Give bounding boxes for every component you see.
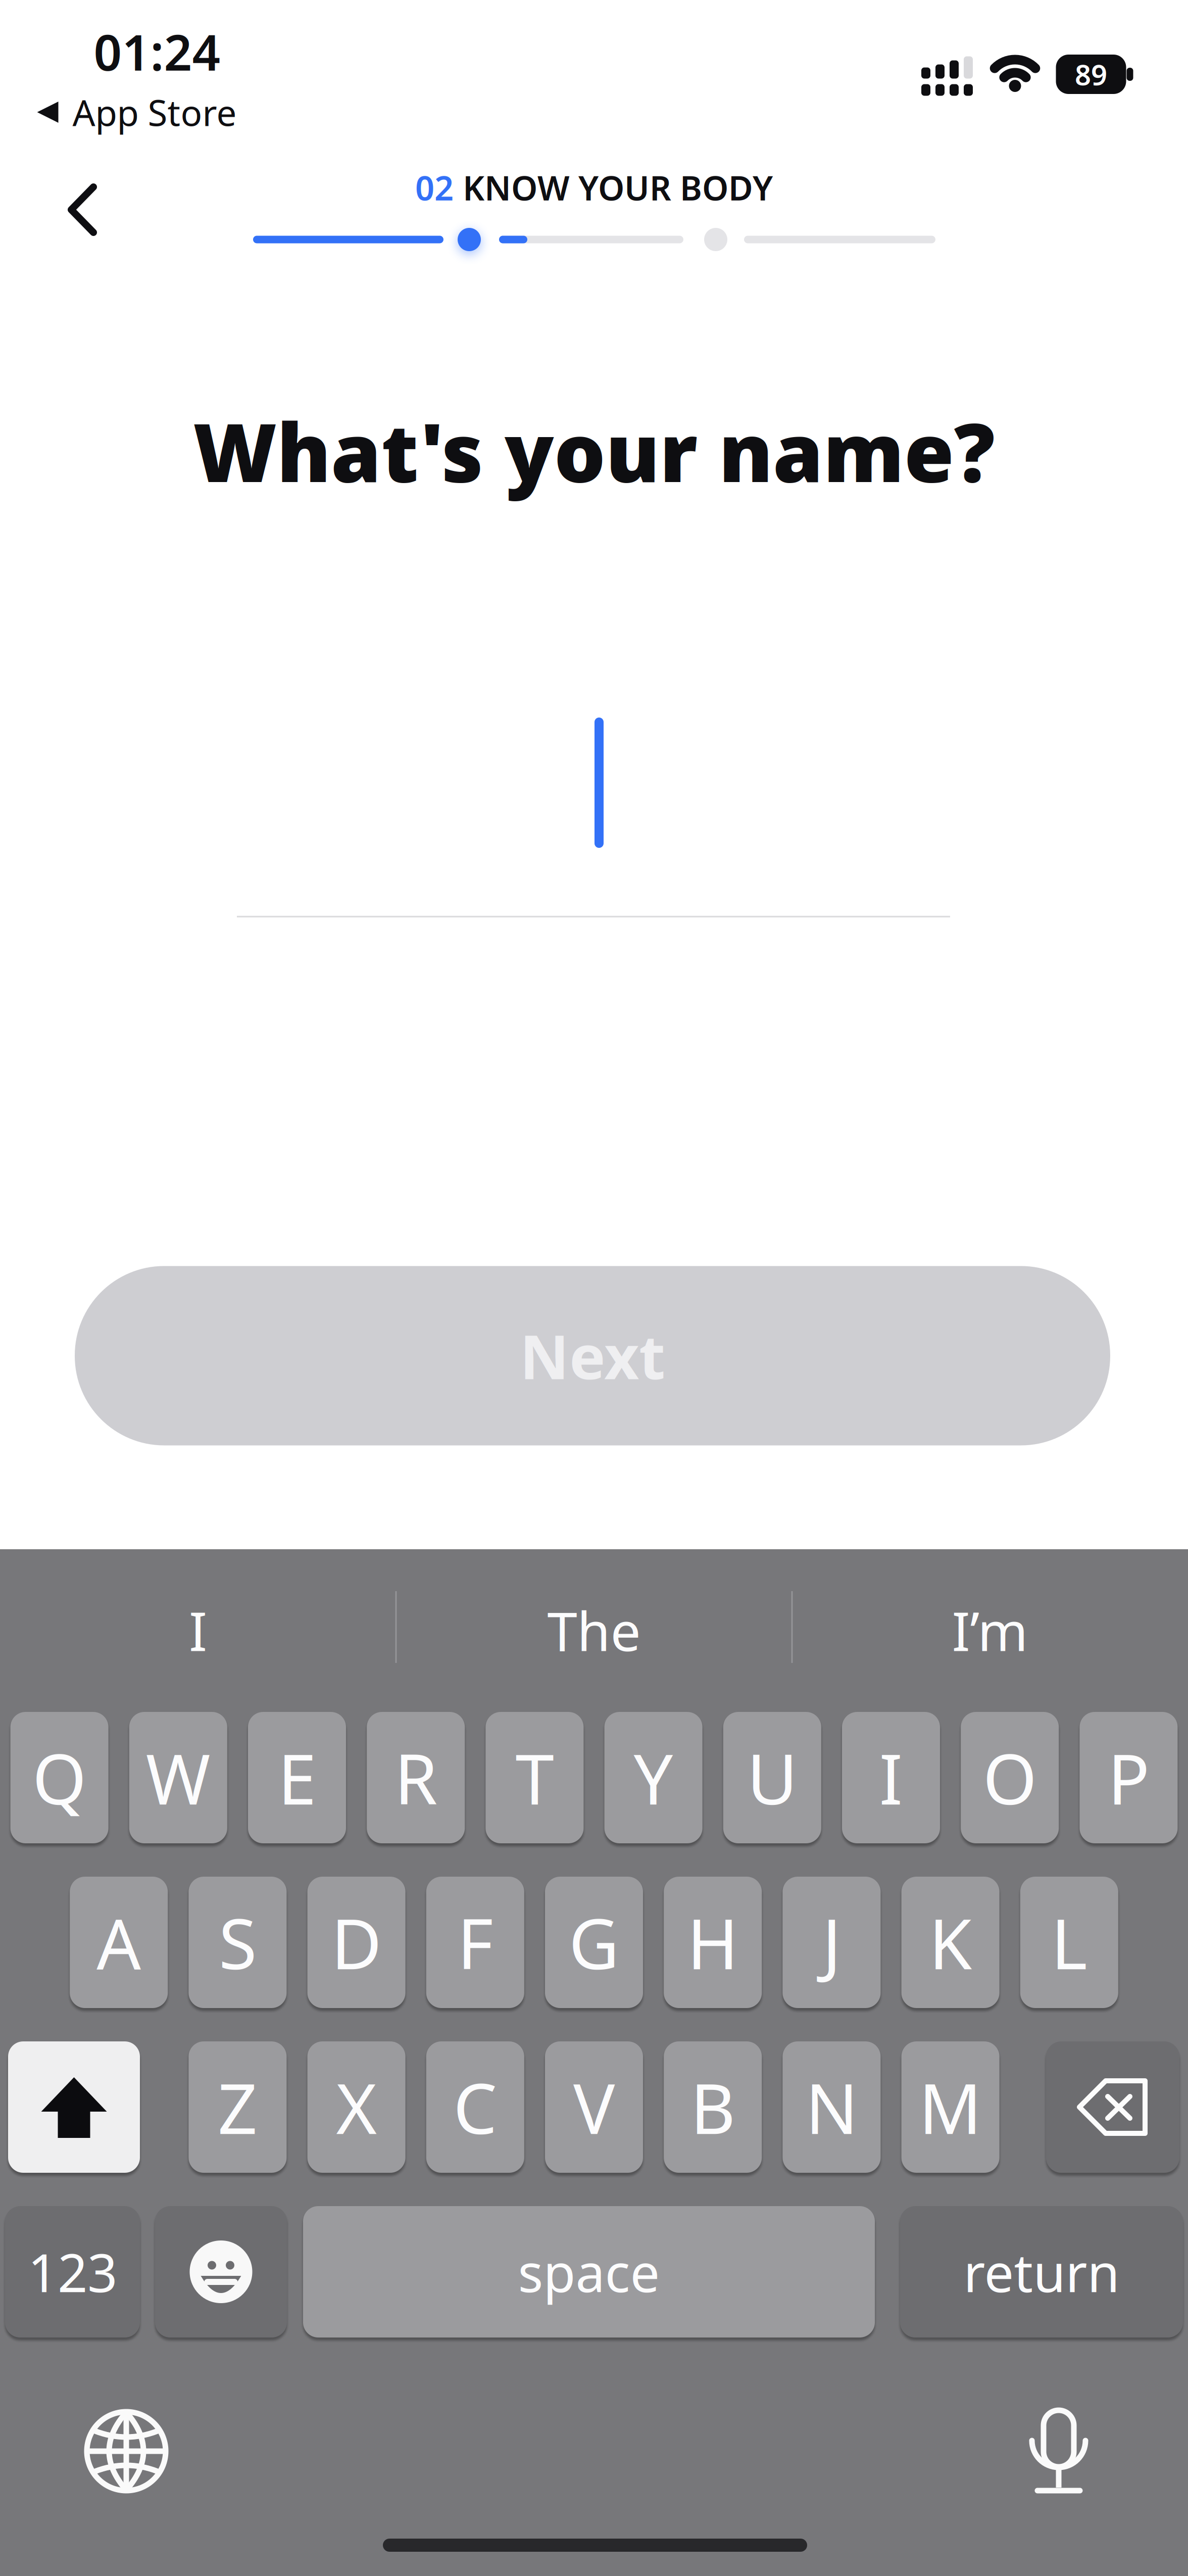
staticText: I bbox=[879, 1732, 903, 1824]
staticText: P bbox=[1108, 1732, 1150, 1824]
staticText: J bbox=[822, 1896, 841, 1988]
staticText: X bbox=[336, 2061, 377, 2153]
staticText: E bbox=[278, 1732, 316, 1824]
button[interactable]: O bbox=[961, 1712, 1059, 1843]
staticText: F bbox=[457, 1896, 493, 1988]
staticText: O bbox=[983, 1732, 1037, 1824]
button[interactable] bbox=[1032, 2408, 1085, 2494]
button[interactable]: Next bbox=[75, 1266, 1110, 1445]
staticText: R bbox=[394, 1732, 437, 1824]
button[interactable]: T bbox=[486, 1712, 584, 1843]
staticText: T bbox=[515, 1732, 554, 1824]
staticText: L bbox=[1051, 1896, 1087, 1988]
staticText: H bbox=[687, 1896, 739, 1988]
button[interactable]: J bbox=[783, 1877, 881, 2008]
button[interactable]: G bbox=[545, 1877, 643, 2008]
button[interactable] bbox=[1046, 2041, 1179, 2173]
button[interactable] bbox=[8, 2041, 140, 2173]
button[interactable]: V bbox=[545, 2041, 643, 2173]
button[interactable] bbox=[87, 2412, 166, 2491]
staticText: K bbox=[929, 1896, 972, 1988]
staticText: Z bbox=[218, 2061, 258, 2153]
staticText: Y bbox=[634, 1732, 673, 1824]
button[interactable]: C bbox=[426, 2041, 524, 2173]
button[interactable]: I bbox=[842, 1712, 940, 1843]
button[interactable]: P bbox=[1080, 1712, 1178, 1843]
staticText: W bbox=[146, 1732, 211, 1824]
staticText: What's your name? bbox=[193, 397, 995, 504]
button[interactable]: W bbox=[129, 1712, 227, 1843]
button[interactable]: I’m bbox=[813, 1585, 1167, 1676]
button[interactable]: 123 bbox=[5, 2206, 140, 2338]
button[interactable]: R bbox=[367, 1712, 465, 1843]
staticText: 02 bbox=[415, 165, 454, 210]
button[interactable]: return bbox=[900, 2206, 1183, 2338]
button[interactable]: H bbox=[664, 1877, 762, 2008]
staticText: B bbox=[690, 2061, 735, 2153]
staticText: I bbox=[189, 1594, 207, 1666]
button[interactable]: App Store bbox=[36, 88, 237, 136]
staticText: S bbox=[219, 1896, 257, 1988]
staticText: M bbox=[919, 2061, 982, 2153]
staticText: App Store bbox=[72, 88, 237, 136]
button[interactable]: F bbox=[426, 1877, 524, 2008]
button[interactable]: space bbox=[303, 2206, 875, 2338]
staticText: 89 bbox=[1075, 55, 1107, 93]
button[interactable]: E bbox=[248, 1712, 346, 1843]
button[interactable]: M bbox=[901, 2041, 999, 2173]
button[interactable]: The bbox=[417, 1585, 771, 1676]
button[interactable] bbox=[68, 184, 96, 235]
button[interactable]: Z bbox=[189, 2041, 287, 2173]
staticText: 01:24 bbox=[94, 19, 220, 84]
button[interactable]: B bbox=[664, 2041, 762, 2173]
staticText: D bbox=[331, 1896, 382, 1988]
button[interactable]: S bbox=[189, 1877, 287, 2008]
button[interactable]: D bbox=[307, 1877, 405, 2008]
staticText: Next bbox=[520, 1315, 665, 1396]
staticText: G bbox=[569, 1896, 619, 1988]
staticText: C bbox=[453, 2061, 497, 2153]
button[interactable]: A bbox=[70, 1877, 168, 2008]
button[interactable]: L bbox=[1020, 1877, 1118, 2008]
staticText: V bbox=[573, 2061, 615, 2153]
staticText: KNOW YOUR BODY bbox=[463, 165, 773, 210]
staticText: N bbox=[805, 2061, 858, 2153]
staticText: space bbox=[518, 2237, 660, 2307]
button[interactable]: Q bbox=[10, 1712, 108, 1843]
staticText: Q bbox=[32, 1732, 86, 1824]
button[interactable]: Y bbox=[604, 1712, 702, 1843]
button[interactable] bbox=[155, 2206, 287, 2338]
staticText: I’m bbox=[952, 1594, 1028, 1666]
staticText: The bbox=[547, 1594, 641, 1666]
button[interactable]: U bbox=[723, 1712, 821, 1843]
staticText: A bbox=[97, 1896, 141, 1988]
staticText: 123 bbox=[28, 2237, 117, 2307]
staticText: U bbox=[747, 1732, 797, 1824]
staticText: return bbox=[963, 2237, 1120, 2307]
button[interactable]: N bbox=[783, 2041, 881, 2173]
button[interactable]: I bbox=[21, 1585, 375, 1676]
button[interactable]: X bbox=[307, 2041, 405, 2173]
button[interactable]: K bbox=[901, 1877, 999, 2008]
